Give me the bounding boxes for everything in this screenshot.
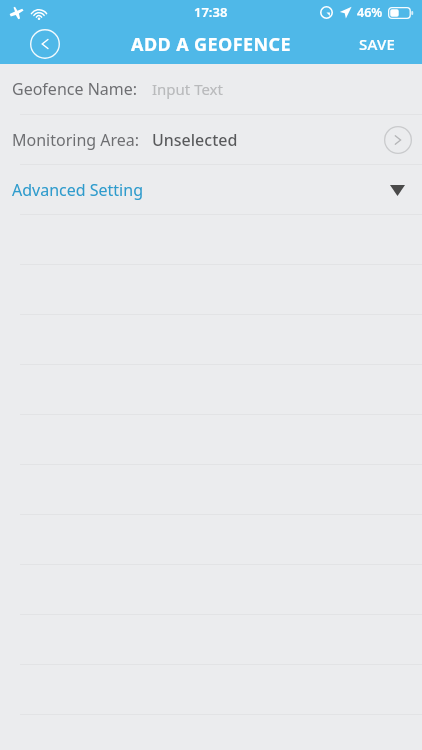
staticText: Unselected bbox=[152, 129, 238, 151]
staticText: Input Text bbox=[152, 79, 223, 99]
staticText: 17:38 bbox=[194, 3, 228, 21]
other: Expand advanced setting bbox=[384, 177, 410, 203]
button[interactable]: Advanced Setting bbox=[0, 165, 422, 214]
button[interactable]: Monitoring Area: bbox=[0, 115, 422, 164]
staticText: Geofence Name: bbox=[12, 78, 138, 100]
button[interactable]: SAVE bbox=[333, 24, 422, 64]
staticText: 46% bbox=[357, 4, 383, 21]
staticText: SAVE bbox=[359, 34, 396, 54]
staticText: Advanced Setting bbox=[12, 179, 143, 201]
button[interactable]: Back bbox=[24, 24, 66, 64]
staticText: ADD A GEOFENCE bbox=[0, 32, 422, 57]
button[interactable]: Choose monitoring area bbox=[383, 125, 413, 155]
button[interactable]: Geofence Name: bbox=[0, 64, 422, 114]
staticText: Monitoring Area: bbox=[12, 129, 140, 151]
